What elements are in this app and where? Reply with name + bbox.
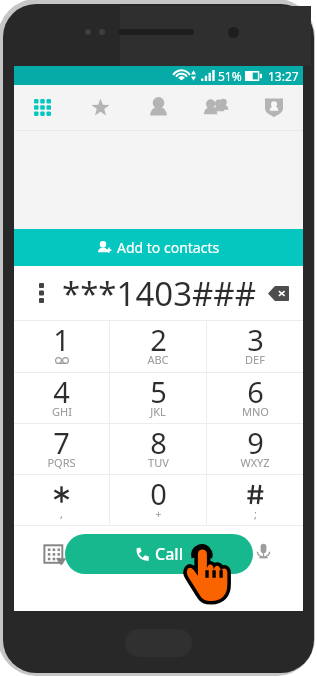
button[interactable]: 4	[14, 373, 109, 423]
button[interactable]: Call	[65, 534, 253, 574]
staticText: 3	[247, 320, 264, 359]
button[interactable]: 5	[110, 373, 206, 423]
button[interactable]: Voice search	[238, 526, 288, 582]
staticText: PQRS	[47, 455, 76, 470]
button[interactable]: 7	[14, 424, 109, 474]
staticText: Call	[155, 543, 183, 565]
staticText: 5	[150, 372, 167, 411]
staticText: TUV	[148, 455, 169, 470]
staticText: ABC	[147, 352, 169, 367]
button[interactable]: Contacts	[129, 85, 187, 131]
button[interactable]: Groups	[187, 85, 245, 131]
button[interactable]: 3	[207, 321, 303, 372]
staticText: 0	[150, 474, 167, 513]
button[interactable]: Backspace	[258, 266, 303, 320]
staticText: 9	[247, 423, 264, 462]
button[interactable]: Hide keypad	[29, 526, 79, 582]
staticText: 8	[150, 423, 167, 462]
button[interactable]: Add to contacts	[14, 229, 303, 266]
button[interactable]: 8	[110, 424, 206, 474]
staticText: ***1403###	[62, 271, 257, 316]
staticText: 51%	[218, 68, 242, 84]
staticText: Add to contacts	[117, 238, 220, 257]
staticText: JKL	[150, 404, 166, 419]
staticText: 7	[53, 423, 70, 462]
staticText: 6	[247, 372, 264, 411]
button[interactable]: 6	[207, 373, 303, 423]
staticText: 4	[53, 372, 70, 411]
staticText: GHI	[52, 404, 72, 419]
staticText: WXYZ	[240, 455, 270, 470]
staticText: ;	[254, 506, 257, 521]
staticText: MNO	[242, 404, 269, 419]
button[interactable]: ;	[207, 475, 303, 525]
staticText: DEF	[245, 352, 265, 367]
staticText: +	[155, 506, 162, 521]
button[interactable]: Protected	[245, 85, 303, 131]
staticText: 13:27	[268, 68, 299, 84]
button[interactable]: 9	[207, 424, 303, 474]
button[interactable]: Keypad	[14, 85, 71, 131]
staticText: ,	[60, 506, 63, 521]
button[interactable]: More options	[14, 266, 56, 320]
button[interactable]: 1	[14, 321, 109, 372]
staticText: 1	[53, 320, 70, 359]
staticText: 2	[150, 320, 167, 359]
button[interactable]: 2	[110, 321, 206, 372]
button[interactable]: Favourites	[71, 85, 129, 131]
button[interactable]: 0	[110, 475, 206, 525]
button[interactable]: ,	[14, 475, 109, 525]
